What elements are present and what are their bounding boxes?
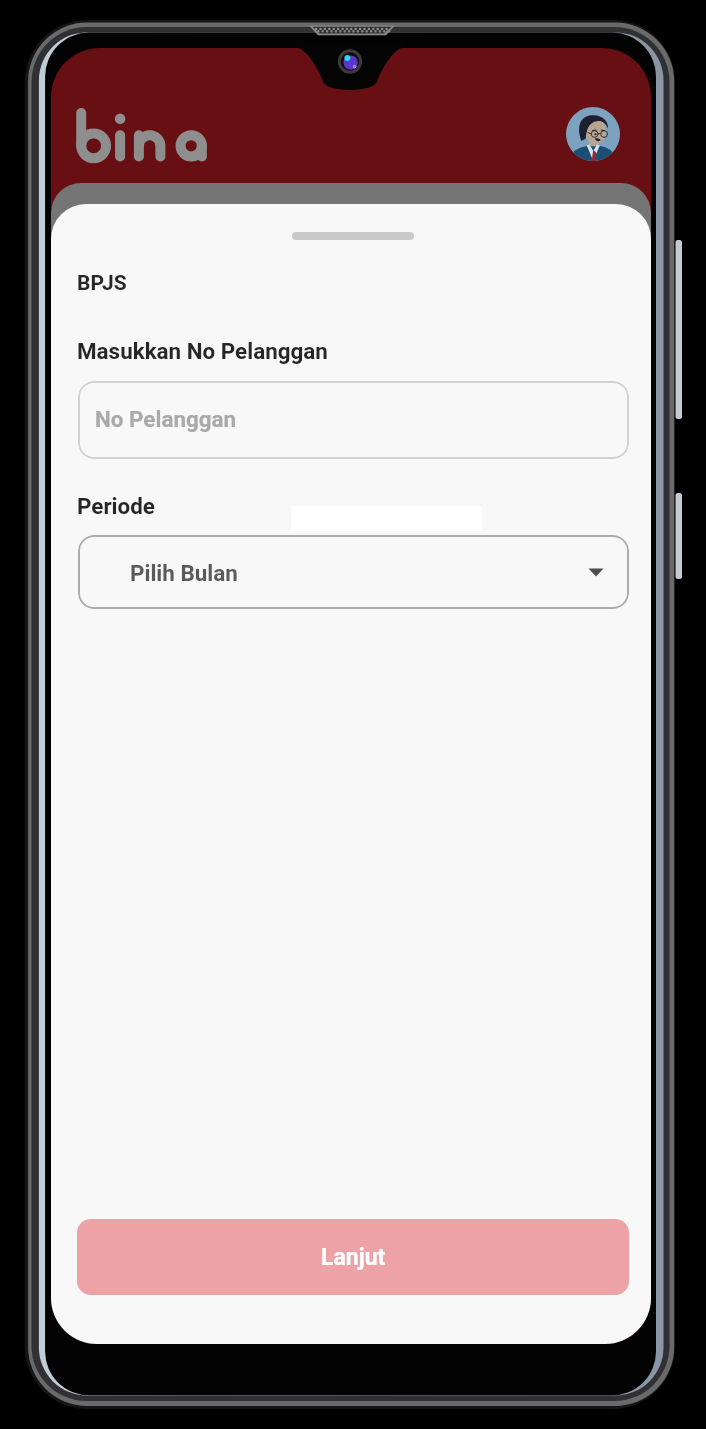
- staticText: Pilih Bulan: [130, 560, 238, 586]
- staticText: No Pelanggan: [95, 406, 237, 432]
- button[interactable]: Profile: [566, 107, 620, 161]
- staticText: Masukkan No Pelanggan: [77, 338, 328, 364]
- staticText: BPJS: [77, 271, 127, 296]
- other: bina: [76, 107, 208, 163]
- staticText: Periode: [77, 493, 155, 519]
- button[interactable]: Pilih Bulan: [78, 535, 629, 609]
- button[interactable]: Lanjut: [77, 1219, 629, 1295]
- button[interactable]: No Pelanggan: [78, 381, 629, 459]
- staticText: Lanjut: [321, 1244, 386, 1271]
